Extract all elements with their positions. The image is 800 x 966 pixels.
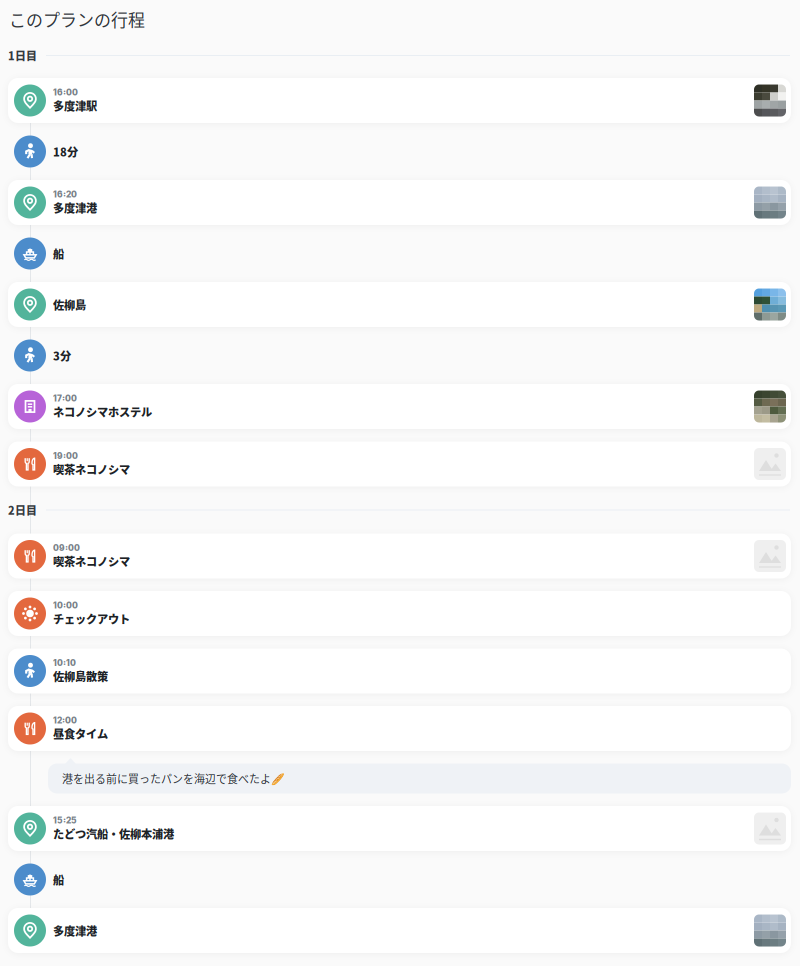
staticText: 17:00	[53, 393, 77, 403]
staticText: 佐柳島	[53, 296, 86, 313]
button[interactable]: 17:00	[8, 384, 791, 429]
button[interactable]: 19:00	[8, 441, 791, 486]
button[interactable]: 16:20	[8, 180, 791, 225]
button[interactable]: 09:00	[8, 533, 791, 578]
staticText: 16:00	[53, 87, 78, 97]
staticText: 16:20	[53, 189, 77, 199]
staticText: 船	[53, 245, 64, 262]
staticText: 港を出る前に買ったパンを海辺で食べたよ🥖	[62, 771, 285, 786]
staticText: このプランの行程	[9, 7, 145, 31]
staticText: 喫茶ネコノシマ	[53, 553, 130, 569]
button[interactable]: 10:10	[8, 648, 791, 693]
staticText: 09:00	[53, 543, 80, 553]
staticText: 12:00	[53, 715, 77, 725]
staticText: 喫茶ネコノシマ	[53, 461, 130, 477]
staticText: 10:10	[53, 658, 76, 668]
staticText: 2日目	[8, 502, 37, 518]
button[interactable]: 3分	[8, 339, 791, 371]
button[interactable]: 船	[8, 863, 791, 895]
button[interactable]: 16:00	[8, 78, 791, 123]
staticText: 多度津港	[53, 199, 97, 216]
staticText: 19:00	[53, 451, 78, 461]
staticText: 1日目	[8, 48, 37, 63]
staticText: 多度津駅	[53, 97, 97, 114]
staticText: 佐柳島散策	[53, 668, 108, 684]
staticText: 10:00	[53, 600, 78, 610]
button[interactable]: 18分	[8, 135, 791, 167]
staticText: ネコノシマホステル	[53, 403, 152, 420]
button[interactable]: 多度津港	[8, 908, 791, 953]
staticText: 船	[53, 871, 64, 888]
staticText: 15:25	[53, 815, 77, 825]
button[interactable]: 10:00	[8, 591, 791, 636]
button[interactable]: 12:00	[8, 706, 791, 751]
button[interactable]: 船	[8, 237, 791, 269]
staticText: たどつ汽船・佐柳本浦港	[53, 825, 174, 842]
staticText: 多度津港	[53, 922, 97, 939]
staticText: チェックアウト	[53, 610, 130, 627]
staticText: 昼食タイム	[53, 725, 108, 742]
button[interactable]: 佐柳島	[8, 282, 791, 327]
staticText: 18分	[53, 143, 78, 160]
button[interactable]: 15:25	[8, 806, 791, 851]
staticText: 3分	[53, 347, 71, 364]
